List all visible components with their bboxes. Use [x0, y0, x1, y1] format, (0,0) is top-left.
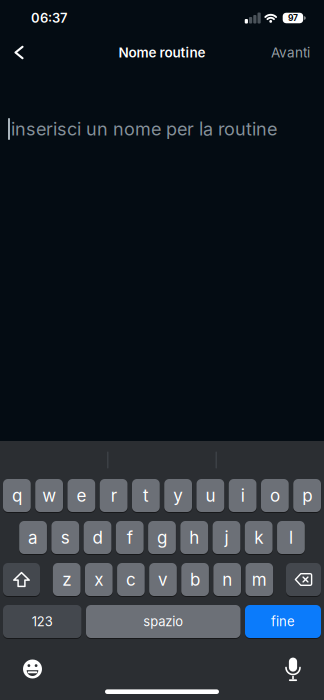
- staticText: spazio: [143, 614, 183, 629]
- button[interactable]: q: [3, 479, 31, 512]
- button[interactable]: j: [213, 521, 240, 554]
- button[interactable]: n: [213, 563, 241, 596]
- staticText: t: [143, 485, 149, 506]
- staticText: 06:37: [31, 10, 67, 26]
- staticText: inserisci un nome per la routine: [11, 118, 277, 140]
- button[interactable]: m: [245, 563, 273, 596]
- button[interactable]: d: [84, 521, 111, 554]
- staticText: p: [302, 485, 312, 506]
- button[interactable]: Indietro: [0, 37, 24, 68]
- button[interactable]: y: [164, 479, 192, 512]
- staticText: b: [190, 569, 200, 590]
- staticText: j: [224, 527, 228, 548]
- staticText: d: [92, 527, 102, 548]
- button[interactable]: o: [261, 479, 289, 512]
- button[interactable]: s: [51, 521, 79, 554]
- button[interactable]: p: [293, 479, 321, 512]
- button[interactable]: r: [100, 479, 128, 512]
- button[interactable]: a: [19, 521, 47, 554]
- button[interactable]: spazio: [86, 605, 240, 638]
- button[interactable]: Avanti: [271, 44, 324, 61]
- button[interactable]: e: [67, 479, 95, 512]
- button[interactable]: h: [180, 521, 208, 554]
- staticText: l: [289, 527, 293, 548]
- staticText: z: [62, 569, 71, 590]
- button[interactable]: 123: [3, 605, 81, 638]
- staticText: r: [111, 485, 117, 506]
- button[interactable]: l: [277, 521, 305, 554]
- button[interactable]: c: [117, 563, 145, 596]
- staticText: v: [158, 569, 168, 590]
- staticText: c: [126, 569, 136, 590]
- staticText: h: [189, 527, 199, 548]
- staticText: Nome routine: [118, 44, 205, 61]
- button[interactable]: z: [53, 563, 80, 596]
- button[interactable]: v: [149, 563, 177, 596]
- staticText: q: [12, 485, 22, 506]
- staticText: o: [270, 485, 280, 506]
- staticText: fine: [271, 614, 295, 629]
- staticText: w: [42, 485, 56, 506]
- staticText: Avanti: [271, 44, 310, 61]
- staticText: x: [94, 569, 103, 590]
- button[interactable]: i: [229, 479, 257, 512]
- staticText: a: [28, 527, 38, 548]
- button[interactable]: g: [148, 521, 176, 554]
- staticText: f: [127, 527, 133, 548]
- staticText: u: [205, 485, 215, 506]
- staticText: e: [76, 485, 86, 506]
- button[interactable]: b: [181, 563, 209, 596]
- staticText: n: [222, 569, 232, 590]
- button[interactable]: Dettatura: [284, 657, 324, 680]
- button[interactable]: Cancella: [286, 563, 321, 596]
- staticText: y: [173, 485, 183, 506]
- button[interactable]: x: [85, 563, 113, 596]
- button[interactable]: k: [245, 521, 272, 554]
- staticText: k: [254, 527, 263, 548]
- staticText: s: [61, 527, 70, 548]
- button[interactable]: t: [132, 479, 160, 512]
- staticText: i: [241, 485, 245, 506]
- button[interactable]: u: [196, 479, 224, 512]
- button[interactable]: Maiuscole: [3, 563, 40, 596]
- staticText: m: [252, 569, 267, 590]
- button[interactable]: fine: [245, 605, 321, 638]
- staticText: 123: [32, 614, 53, 629]
- staticText: 97: [288, 13, 298, 23]
- button[interactable]: w: [35, 479, 63, 512]
- staticText: g: [157, 527, 167, 548]
- button[interactable]: f: [116, 521, 144, 554]
- button[interactable]: Emoji: [0, 659, 42, 678]
